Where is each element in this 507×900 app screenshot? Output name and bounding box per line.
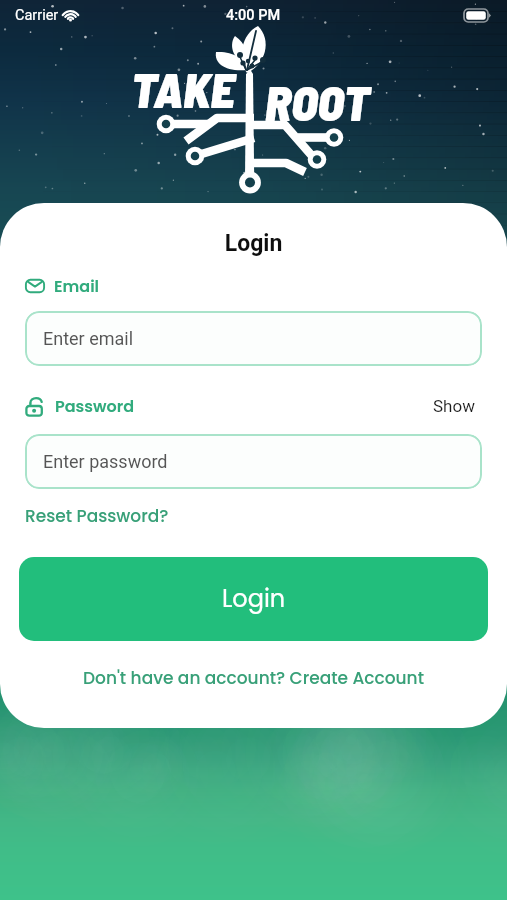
button[interactable]: Login (19, 557, 488, 641)
button[interactable]: Enter password (25, 434, 482, 489)
staticText: TAKE (131, 59, 235, 118)
button[interactable]: Don't have an account? Create Account (0, 666, 507, 690)
button[interactable]: Reset Password? (25, 504, 169, 528)
staticText: Password (55, 395, 135, 417)
staticText: Login (222, 582, 286, 616)
staticText: Login (0, 230, 507, 257)
staticText: Enter password (43, 451, 168, 472)
staticText: Enter email (43, 328, 134, 349)
button[interactable]: Email (25, 275, 100, 297)
staticText: ROOT (265, 72, 370, 131)
staticText: 4:00 PM (226, 7, 281, 24)
staticText: Reset Password? (25, 504, 169, 528)
other: Battery (464, 9, 491, 22)
staticText: Carrier (15, 7, 59, 24)
button[interactable]: Enter email (25, 311, 482, 366)
staticText: Show (433, 396, 475, 416)
staticText: Don't have an account? Create Account (83, 666, 424, 690)
button[interactable]: Password (25, 395, 135, 417)
button[interactable]: Show (433, 396, 482, 416)
staticText: Email (54, 275, 100, 297)
